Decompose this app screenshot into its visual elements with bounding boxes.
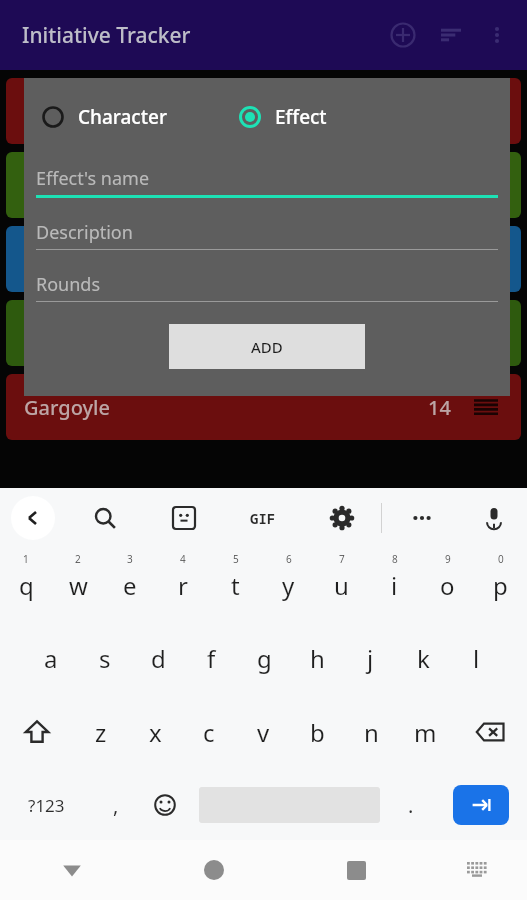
staticText: a (44, 642, 58, 675)
button[interactable] (6, 152, 521, 218)
button[interactable]: ?123 (0, 770, 93, 840)
button[interactable]: m (398, 694, 452, 770)
button[interactable]: Next (434, 770, 527, 840)
button[interactable]: Sort (427, 11, 475, 59)
button[interactable]: Shift (0, 694, 74, 770)
staticText: . (408, 792, 414, 819)
button[interactable]: f (185, 618, 238, 694)
button[interactable]: 6 (262, 548, 315, 618)
staticText: 7 (339, 552, 345, 566)
staticText: x (149, 716, 162, 749)
staticText: 2 (75, 552, 81, 566)
staticText: s (99, 642, 111, 675)
button[interactable]: l (450, 618, 503, 694)
button[interactable]: g (238, 618, 291, 694)
staticText: t (231, 569, 240, 602)
staticText: i (391, 569, 398, 602)
button[interactable]: More options (475, 13, 519, 57)
staticText: Rounds (36, 272, 101, 297)
button[interactable]: Keyboard (427, 840, 527, 900)
staticText: 1 (23, 552, 29, 566)
button[interactable]: x (128, 694, 182, 770)
button[interactable]: Effect (235, 100, 331, 134)
staticText: n (364, 716, 379, 749)
button[interactable]: Stickers (144, 488, 223, 548)
button[interactable]: a (24, 618, 78, 694)
button[interactable]: 0 (474, 548, 527, 618)
button[interactable]: 8 (368, 548, 421, 618)
staticText: 4 (180, 552, 186, 566)
button[interactable]: . (388, 770, 434, 840)
button[interactable]: 1 (0, 548, 52, 618)
button[interactable] (6, 300, 521, 366)
staticText: Gargoyle (24, 394, 110, 421)
button[interactable]: Voice input (461, 488, 527, 548)
staticText: 9 (445, 552, 451, 566)
staticText: r (178, 569, 188, 602)
button[interactable]: n (344, 694, 398, 770)
button[interactable]: Back (0, 488, 66, 548)
staticText: 6 (286, 552, 292, 566)
button[interactable]: h (291, 618, 344, 694)
button[interactable]: , (93, 770, 139, 840)
staticText: , (113, 792, 119, 819)
button[interactable]: 2 (52, 548, 104, 618)
staticText: c (203, 716, 215, 749)
button[interactable]: 7 (315, 548, 368, 618)
button[interactable]: More (382, 488, 461, 548)
staticText: h (310, 642, 325, 675)
button[interactable]: ADD (169, 324, 365, 369)
button[interactable]: Character (38, 100, 171, 134)
staticText: l (473, 642, 480, 675)
button[interactable]: 3 (104, 548, 156, 618)
staticText: Initiative Tracker (22, 21, 191, 50)
staticText: q (19, 569, 34, 602)
button[interactable]: 9 (421, 548, 474, 618)
button[interactable]: Gargoyle (6, 374, 521, 440)
staticText: e (123, 569, 137, 602)
button[interactable]: GIF (223, 488, 302, 548)
staticText: v (257, 716, 270, 749)
button[interactable]: Settings (302, 488, 381, 548)
staticText: m (414, 716, 437, 749)
staticText: w (69, 569, 88, 602)
staticText: f (207, 642, 216, 675)
button[interactable]: Backspace (452, 694, 527, 770)
button[interactable]: k (397, 618, 450, 694)
button[interactable]: Home (143, 840, 285, 900)
button[interactable]: c (182, 694, 236, 770)
staticText: Effect (275, 104, 327, 130)
button[interactable]: v (236, 694, 290, 770)
button[interactable]: 5 (209, 548, 262, 618)
staticText: o (440, 569, 455, 602)
button[interactable]: d (132, 618, 185, 694)
staticText: y (282, 569, 295, 602)
button[interactable]: Space (191, 770, 388, 840)
button[interactable]: b (290, 694, 344, 770)
button[interactable]: Emoji (139, 770, 191, 840)
staticText: p (493, 569, 508, 602)
staticText: 5 (233, 552, 239, 566)
button[interactable]: Recents (285, 840, 427, 900)
staticText: k (417, 642, 430, 675)
staticText: 8 (392, 552, 398, 566)
button[interactable]: Add (379, 11, 427, 59)
button[interactable]: z (74, 694, 128, 770)
staticText: j (367, 642, 374, 675)
button[interactable]: s (78, 618, 132, 694)
staticText: z (95, 716, 107, 749)
staticText: GIF (250, 509, 276, 528)
button[interactable] (6, 226, 521, 292)
staticText: d (151, 642, 166, 675)
button[interactable] (6, 78, 521, 144)
staticText: Description (36, 220, 133, 245)
staticText: Effect's name (36, 166, 150, 191)
staticText: u (334, 569, 349, 602)
button[interactable]: Search (66, 488, 144, 548)
staticText: 0 (498, 552, 504, 566)
button[interactable]: Back (0, 840, 143, 900)
staticText: ?123 (28, 794, 65, 817)
button[interactable]: j (344, 618, 397, 694)
staticText: g (257, 642, 272, 675)
button[interactable]: 4 (156, 548, 209, 618)
